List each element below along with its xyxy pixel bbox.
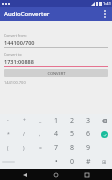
- button[interactable]: _: [32, 114, 48, 127]
- staticText: 1731:00888: [4, 58, 34, 65]
- staticText: Convert to:: [4, 52, 23, 57]
- staticText: ,: [39, 131, 41, 138]
- button[interactable]: More options: [98, 7, 112, 21]
- staticText: 7: [54, 143, 59, 153]
- staticText: Convert from:: [4, 33, 27, 38]
- staticText: AudioConverter: [4, 10, 50, 18]
- button[interactable]: 2: [64, 114, 80, 127]
- staticText: 1: [54, 116, 59, 126]
- staticText: +: [23, 117, 26, 124]
- staticText: CONVERT: [47, 71, 66, 76]
- staticText: 6: [86, 129, 91, 139]
- staticText: ): [23, 145, 25, 152]
- button[interactable]: 7: [48, 141, 64, 155]
- staticText: 1:41: [103, 1, 111, 6]
- staticText: 5: [70, 129, 75, 139]
- button[interactable]: Backspace: [97, 114, 111, 127]
- button[interactable]: *: [0, 127, 16, 141]
- button[interactable]: CONVERT: [4, 69, 108, 77]
- staticText: 8: [70, 143, 75, 153]
- staticText: *: [7, 131, 10, 138]
- staticText: •: [55, 157, 58, 167]
- button[interactable]: 5: [64, 127, 80, 141]
- button[interactable]: -: [0, 114, 16, 127]
- staticText: #: [86, 157, 91, 167]
- staticText: -: [7, 117, 9, 124]
- button[interactable]: Symbols: [97, 155, 111, 169]
- button[interactable]: Enter: [97, 127, 111, 141]
- button[interactable]: /: [16, 127, 32, 141]
- staticText: (: [7, 145, 9, 152]
- staticText: 144100/700: [4, 39, 35, 46]
- button[interactable]: 9: [80, 141, 96, 155]
- staticText: _: [39, 117, 42, 124]
- button[interactable]: #: [80, 155, 96, 169]
- button[interactable]: ): [16, 141, 32, 155]
- button[interactable]: ,: [32, 127, 48, 141]
- button[interactable]: 6: [80, 127, 96, 141]
- button[interactable]: Recent apps: [82, 170, 92, 180]
- button[interactable]: +: [16, 114, 32, 127]
- button[interactable]: (: [0, 141, 16, 155]
- button[interactable]: Convert to:: [4, 52, 108, 67]
- staticText: /: [23, 131, 25, 138]
- button[interactable]: 8: [64, 141, 80, 155]
- staticText: 3: [86, 116, 91, 126]
- staticText: ⊞: [102, 159, 107, 165]
- button[interactable]: 1: [48, 114, 64, 127]
- staticText: 0: [70, 157, 75, 167]
- button[interactable]: Home: [51, 170, 61, 180]
- staticText: =: [39, 145, 42, 152]
- button[interactable]: 3: [80, 114, 96, 127]
- button[interactable]: Convert from:: [4, 33, 108, 48]
- staticText: 144100.700: [4, 80, 26, 85]
- staticText: 4: [54, 129, 59, 139]
- button[interactable]: 0: [64, 155, 80, 169]
- staticText: 9: [86, 143, 91, 153]
- button[interactable]: Back: [20, 170, 30, 180]
- button[interactable]: =: [32, 141, 48, 155]
- button[interactable]: 4: [48, 127, 64, 141]
- staticText: 2: [70, 116, 75, 126]
- button[interactable]: •: [48, 155, 64, 169]
